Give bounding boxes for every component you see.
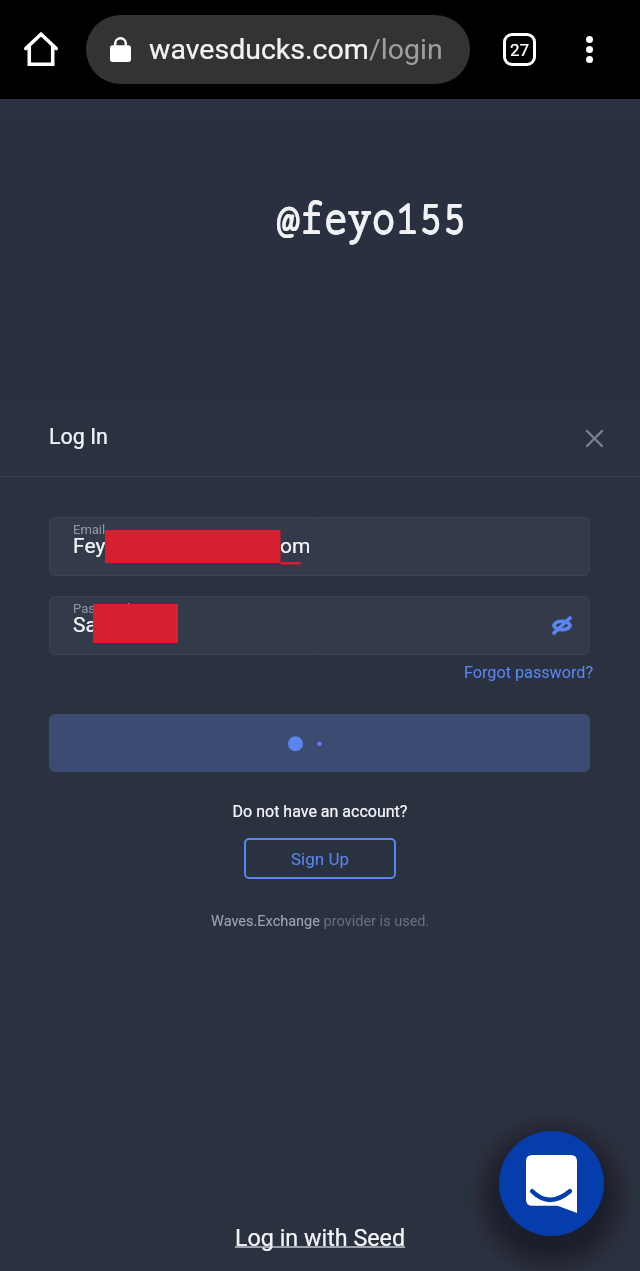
staticText: Log In bbox=[49, 424, 108, 449]
staticText: @feyo155 bbox=[277, 194, 467, 251]
button[interactable]: Password bbox=[49, 596, 590, 655]
button[interactable]: Log in with Seed bbox=[235, 1224, 406, 1251]
button[interactable]: Log In bbox=[49, 714, 590, 772]
staticText: Sa bbox=[73, 613, 97, 638]
staticText: Forgot password? bbox=[464, 663, 594, 682]
staticText: Email bbox=[73, 522, 106, 537]
staticText: wavesducks.com bbox=[149, 33, 369, 66]
button[interactable]: wavesducks.com bbox=[86, 15, 470, 84]
button[interactable]: Email bbox=[49, 517, 590, 576]
staticText: Log in with Seed bbox=[235, 1224, 406, 1251]
staticText: provider is used. bbox=[320, 913, 430, 930]
staticText: 27 bbox=[510, 40, 530, 60]
button[interactable]: Sign Up bbox=[244, 838, 396, 879]
button[interactable]: Forgot password? bbox=[464, 663, 594, 682]
staticText: om bbox=[280, 534, 311, 559]
button[interactable]: Show password bbox=[540, 603, 584, 647]
staticText: Sign Up bbox=[291, 849, 349, 869]
staticText: Do not have an account? bbox=[0, 802, 640, 821]
button[interactable]: Tabs bbox=[486, 16, 552, 82]
staticText: /login bbox=[369, 33, 443, 66]
staticText: @feyo155 bbox=[276, 194, 467, 251]
staticText: Fey bbox=[73, 534, 106, 559]
button[interactable]: Home bbox=[8, 16, 74, 82]
button[interactable]: Close bbox=[570, 414, 618, 462]
staticText: Waves.Exchange bbox=[211, 913, 320, 930]
staticText: Password bbox=[73, 601, 131, 616]
button[interactable]: Open chat bbox=[499, 1131, 604, 1236]
button[interactable]: More options bbox=[556, 16, 622, 83]
